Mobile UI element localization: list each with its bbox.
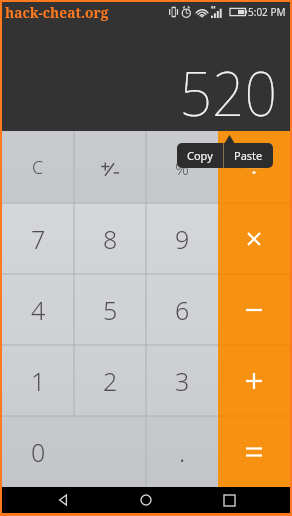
- button[interactable]: Equals: [218, 416, 290, 487]
- button[interactable]: Multiply: [218, 203, 290, 274]
- staticText: Paste: [234, 148, 263, 163]
- staticText: 5:02 PM: [248, 5, 286, 19]
- button[interactable]: Paste: [224, 143, 273, 168]
- button[interactable]: 2: [74, 345, 146, 416]
- staticText: .: [179, 434, 186, 469]
- staticText: 0: [31, 435, 46, 469]
- button[interactable]: 6: [146, 274, 218, 345]
- button[interactable]: Divide: [218, 131, 290, 203]
- button[interactable]: Copy: [177, 143, 223, 168]
- button[interactable]: 1: [2, 345, 74, 416]
- button[interactable]: [74, 131, 146, 203]
- button[interactable]: Back: [41, 487, 85, 513]
- staticText: 2: [103, 364, 118, 398]
- button[interactable]: C: [2, 131, 74, 203]
- staticText: 520: [180, 50, 278, 134]
- staticText: %: [175, 157, 189, 180]
- button[interactable]: 4: [2, 274, 74, 345]
- staticText: C: [32, 155, 44, 180]
- staticText: 3: [175, 364, 190, 398]
- button[interactable]: Recents: [207, 487, 251, 513]
- button[interactable]: 3: [146, 345, 218, 416]
- staticText: 9: [175, 222, 190, 256]
- staticText: 7: [31, 222, 46, 256]
- staticText: 4: [31, 293, 46, 327]
- button[interactable]: Add: [218, 345, 290, 416]
- button[interactable]: Home: [124, 487, 168, 513]
- staticText: hack-cheat.org: [5, 3, 109, 22]
- staticText: Copy: [187, 148, 213, 163]
- button[interactable]: 7: [2, 203, 74, 274]
- button[interactable]: 0: [2, 416, 74, 487]
- button[interactable]: Subtract: [218, 274, 290, 345]
- button[interactable]: 5: [74, 274, 146, 345]
- button[interactable]: .: [146, 416, 218, 487]
- button[interactable]: 9: [146, 203, 218, 274]
- staticText: 6: [175, 293, 190, 327]
- staticText: 5: [103, 293, 118, 327]
- button[interactable]: %: [146, 131, 218, 203]
- staticText: 1: [31, 364, 46, 398]
- button[interactable]: 8: [74, 203, 146, 274]
- staticText: 8: [103, 222, 118, 256]
